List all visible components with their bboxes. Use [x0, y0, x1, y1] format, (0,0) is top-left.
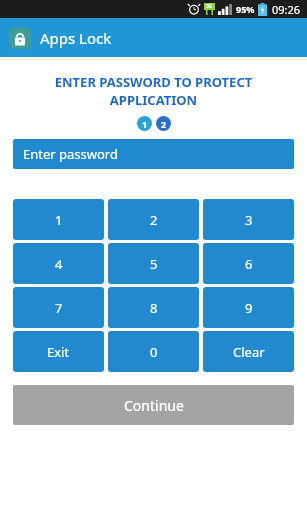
staticText: 9 [245, 299, 253, 317]
staticText: 4 [55, 255, 63, 273]
button[interactable]: 1 [13, 199, 104, 240]
staticText: 1 [142, 118, 148, 130]
staticText: 2 [150, 211, 158, 229]
staticText: 6 [245, 255, 253, 273]
button[interactable]: Exit [13, 331, 104, 372]
staticText: ENTER PASSWORD TO PROTECT APPLICATION [26, 73, 281, 109]
staticText: Exit [47, 343, 70, 361]
button[interactable]: Enter password [13, 139, 294, 169]
staticText: Clear [233, 343, 265, 361]
button[interactable]: 9 [203, 287, 294, 328]
button[interactable]: 0 [108, 331, 199, 372]
staticText: 3 [245, 211, 253, 229]
button[interactable]: 8 [108, 287, 199, 328]
staticText: Continue [124, 396, 184, 415]
staticText: 5 [150, 255, 158, 273]
staticText: 1 [55, 211, 63, 229]
staticText: Apps Lock [40, 28, 112, 48]
staticText: 8 [150, 299, 158, 317]
staticText: 2 [161, 118, 167, 130]
button[interactable]: Clear [203, 331, 294, 372]
button[interactable]: 4 [13, 243, 104, 284]
staticText: 95% [236, 3, 255, 15]
staticText: 3G [206, 3, 213, 10]
button[interactable]: 5 [108, 243, 199, 284]
button[interactable]: 2 [108, 199, 199, 240]
button[interactable]: Continue [13, 385, 294, 425]
staticText: 7 [55, 299, 63, 317]
button[interactable]: 3 [203, 199, 294, 240]
staticText: 0 [150, 343, 158, 361]
staticText: Enter password [23, 145, 118, 163]
button[interactable]: 6 [203, 243, 294, 284]
button[interactable]: 7 [13, 287, 104, 328]
staticText: 09:26 [272, 2, 301, 17]
